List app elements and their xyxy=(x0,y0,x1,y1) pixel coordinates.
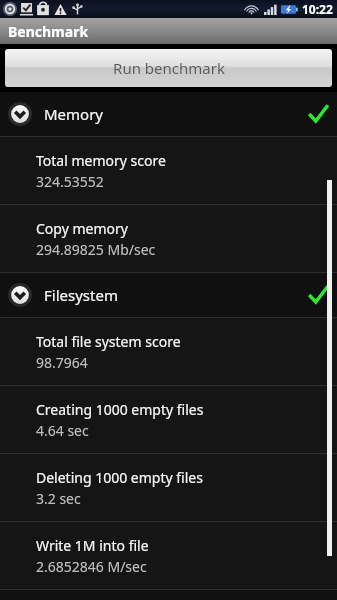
staticText: Run benchmark xyxy=(113,58,225,78)
staticText: 294.89825 Mb/sec xyxy=(36,240,156,259)
button[interactable]: Run benchmark xyxy=(5,49,332,87)
button[interactable]: Creating 1000 empty files xyxy=(0,386,337,454)
staticText: 324.53552 xyxy=(36,172,104,191)
staticText: Filesystem xyxy=(44,285,118,305)
button[interactable]: Deleting 1000 empty files xyxy=(0,454,337,522)
button[interactable]: Total file system score xyxy=(0,318,337,386)
other: Collapse Memory xyxy=(8,102,32,126)
staticText: Write 1M into file xyxy=(36,536,149,555)
button[interactable]: Total memory score xyxy=(0,137,337,205)
staticText: 3.2 sec xyxy=(36,489,81,508)
staticText: 2.6852846 M/sec xyxy=(36,557,147,576)
other: Collapse Filesystem xyxy=(8,283,32,307)
staticText: Benchmark xyxy=(8,22,89,41)
staticText: Total file system score xyxy=(36,332,181,351)
staticText: Copy memory xyxy=(36,219,128,238)
staticText: 10:22 xyxy=(302,1,333,17)
staticText: 4.64 sec xyxy=(36,421,89,440)
button[interactable]: Collapse Filesystem xyxy=(0,273,337,318)
staticText: Total memory score xyxy=(36,151,166,170)
staticText: 98.7964 xyxy=(36,353,88,372)
button[interactable]: Copy memory xyxy=(0,205,337,273)
button[interactable]: Collapse Memory xyxy=(0,92,337,137)
staticText: Creating 1000 empty files xyxy=(36,400,204,419)
staticText: Deleting 1000 empty files xyxy=(36,468,203,487)
staticText: Memory xyxy=(44,104,104,124)
button[interactable]: Write 1M into file xyxy=(0,522,337,590)
